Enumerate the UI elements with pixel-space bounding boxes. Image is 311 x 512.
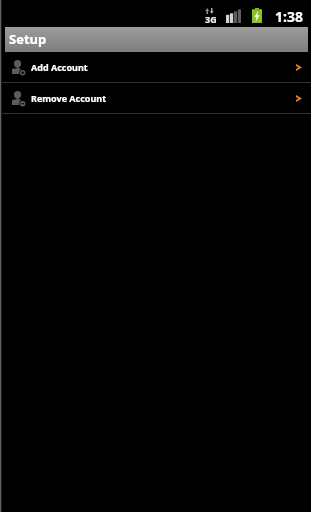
staticText: 3G bbox=[205, 13, 216, 25]
staticText: Remove Account bbox=[31, 92, 107, 104]
staticText: Add Account bbox=[31, 61, 88, 73]
button[interactable]: Remove Account bbox=[0, 83, 311, 113]
staticText: 1:38 bbox=[275, 7, 303, 26]
staticText: Setup bbox=[9, 30, 47, 48]
button[interactable]: Add Account bbox=[0, 52, 311, 82]
